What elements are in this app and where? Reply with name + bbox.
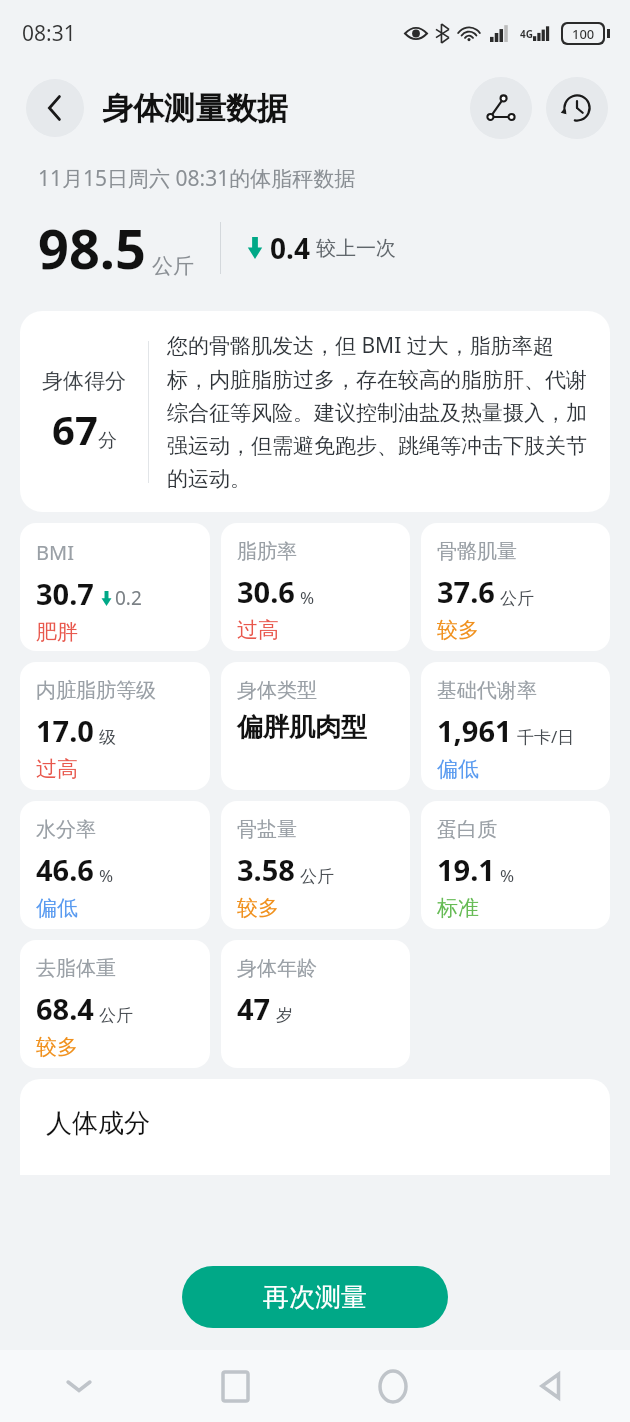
staticText: 脂肪率	[237, 539, 297, 564]
staticText: 公斤	[99, 1005, 133, 1026]
staticText: %	[99, 864, 114, 887]
button[interactable]: 人体成分	[20, 1079, 610, 1175]
staticText: 过高	[36, 756, 78, 782]
staticText: 17.0	[36, 711, 94, 750]
staticText: 67	[52, 402, 98, 456]
button[interactable]: 身体得分	[20, 311, 610, 512]
staticText: 0.2	[115, 585, 142, 611]
staticText: 偏低	[36, 895, 78, 921]
staticText: 1,961	[437, 711, 512, 750]
button[interactable]: Back	[472, 1350, 630, 1422]
staticText: 骨骼肌量	[437, 539, 517, 564]
button[interactable]: 蛋白质	[421, 801, 610, 929]
staticText: 身体测量数据	[102, 89, 288, 128]
staticText: 人体成分	[46, 1107, 150, 1140]
staticText: 标准	[437, 895, 479, 921]
staticText: 水分率	[36, 817, 96, 842]
staticText: 偏低	[437, 756, 479, 782]
button[interactable]: 基础代谢率	[421, 662, 610, 790]
staticText: 千卡/日	[517, 725, 575, 748]
staticText: 08:31	[22, 19, 76, 48]
button[interactable]: Share	[470, 77, 532, 139]
staticText: 3.58	[237, 850, 295, 889]
staticText: 19.1	[437, 850, 495, 889]
button[interactable]: 身体年龄	[221, 940, 410, 1068]
staticText: 肥胖	[36, 619, 78, 645]
staticText: BMI	[36, 539, 74, 566]
button[interactable]: 去脂体重	[20, 940, 210, 1068]
staticText: 骨盐量	[237, 817, 297, 842]
staticText: 37.6	[437, 572, 495, 611]
button[interactable]: 脂肪率	[221, 523, 410, 651]
staticText: 68.4	[36, 989, 94, 1028]
staticText: 分	[98, 429, 117, 453]
staticText: 公斤	[300, 866, 334, 887]
button[interactable]: BMI	[20, 523, 210, 651]
staticText: 偏胖肌肉型	[237, 711, 367, 744]
staticText: 岁	[276, 1005, 293, 1026]
button[interactable]: 内脏脂肪等级	[20, 662, 210, 790]
button[interactable]: History	[546, 77, 608, 139]
staticText: 级	[99, 727, 116, 748]
staticText: 您的骨骼肌发达，但 BMI 过大，脂肪率超标，内脏脂肪过多，存在较高的脂肪肝、代…	[167, 331, 590, 492]
staticText: 100	[572, 25, 595, 43]
staticText: 基础代谢率	[437, 678, 537, 703]
button[interactable]: Recents	[157, 1350, 314, 1422]
button[interactable]: 骨盐量	[221, 801, 410, 929]
staticText: 身体类型	[237, 678, 317, 703]
staticText: %	[300, 586, 315, 609]
button[interactable]: Home	[314, 1350, 472, 1422]
staticText: 再次测量	[263, 1281, 367, 1314]
staticText: 较多	[237, 895, 279, 921]
staticText: 过高	[237, 617, 279, 643]
staticText: 去脂体重	[36, 956, 116, 981]
staticText: 公斤	[500, 588, 534, 609]
staticText: 身体年龄	[237, 956, 317, 981]
button[interactable]: 身体类型	[221, 662, 410, 790]
staticText: 4G	[520, 27, 533, 41]
staticText: 47	[237, 989, 271, 1028]
button[interactable]: Back	[26, 79, 84, 137]
staticText: 较多	[437, 617, 479, 643]
staticText: 内脏脂肪等级	[36, 678, 156, 703]
button[interactable]: 再次测量	[182, 1266, 448, 1328]
staticText: 11月15日周六 08:31的体脂秤数据	[38, 164, 356, 193]
staticText: 身体得分	[42, 368, 126, 394]
staticText: 蛋白质	[437, 817, 497, 842]
staticText: %	[500, 864, 515, 887]
staticText: 30.7	[36, 574, 94, 613]
button[interactable]: Hide keyboard	[0, 1350, 157, 1422]
staticText: 公斤	[152, 253, 194, 279]
staticText: 98.5	[38, 211, 146, 285]
staticText: 30.6	[237, 572, 295, 611]
staticText: 0.4	[270, 229, 310, 267]
staticText: 较上一次	[316, 236, 396, 261]
button[interactable]: 水分率	[20, 801, 210, 929]
button[interactable]: 骨骼肌量	[421, 523, 610, 651]
staticText: 较多	[36, 1034, 78, 1060]
staticText: 46.6	[36, 850, 94, 889]
